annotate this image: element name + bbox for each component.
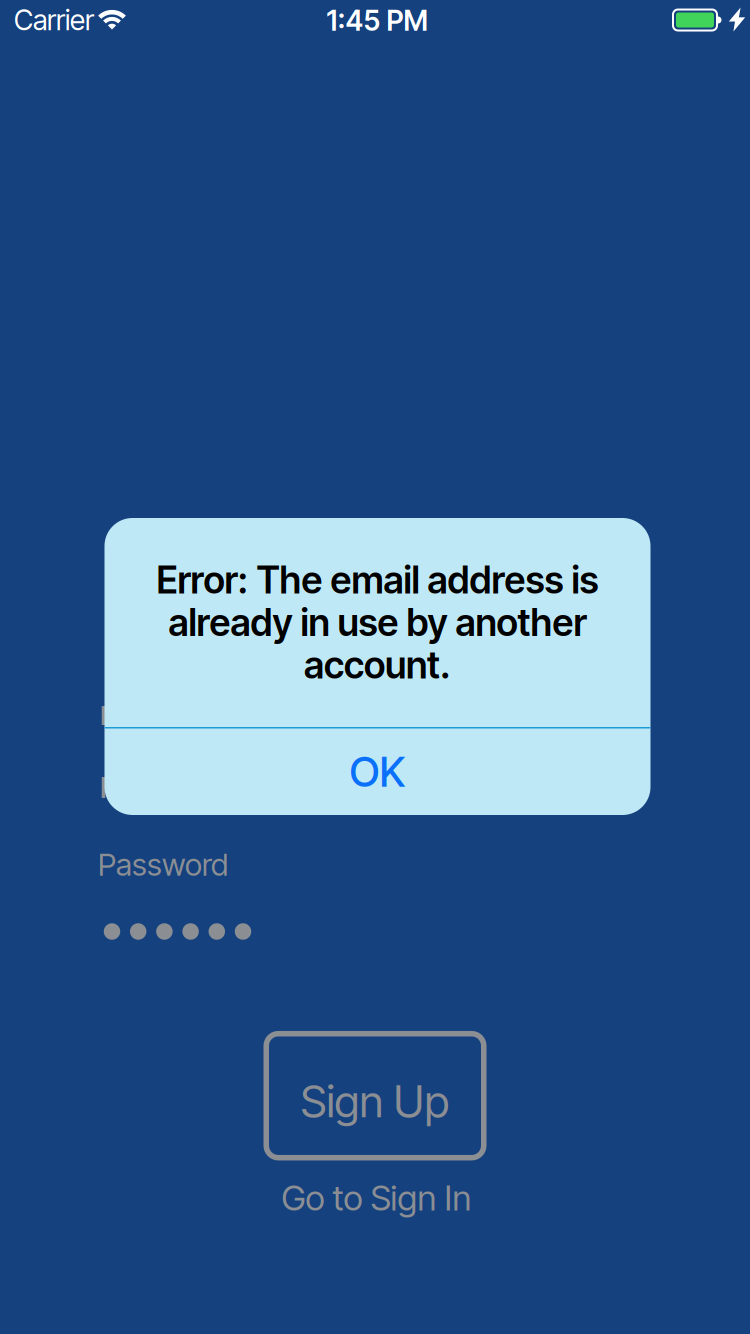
staticText: OK <box>349 747 405 796</box>
staticText: 1:45 PM <box>326 4 427 37</box>
staticText: already in use by another <box>168 600 586 644</box>
staticText: account. <box>304 643 451 687</box>
button[interactable]: Sign Up <box>266 1034 484 1158</box>
staticText: Error: The email address is <box>156 558 598 602</box>
button[interactable]: Go to Sign In <box>281 1178 471 1218</box>
staticText: Password <box>98 846 228 883</box>
staticText: Go to Sign In <box>281 1178 471 1218</box>
staticText: Sign Up <box>300 1075 449 1127</box>
button[interactable]: OK <box>104 728 650 815</box>
staticText: Carrier <box>14 3 94 36</box>
